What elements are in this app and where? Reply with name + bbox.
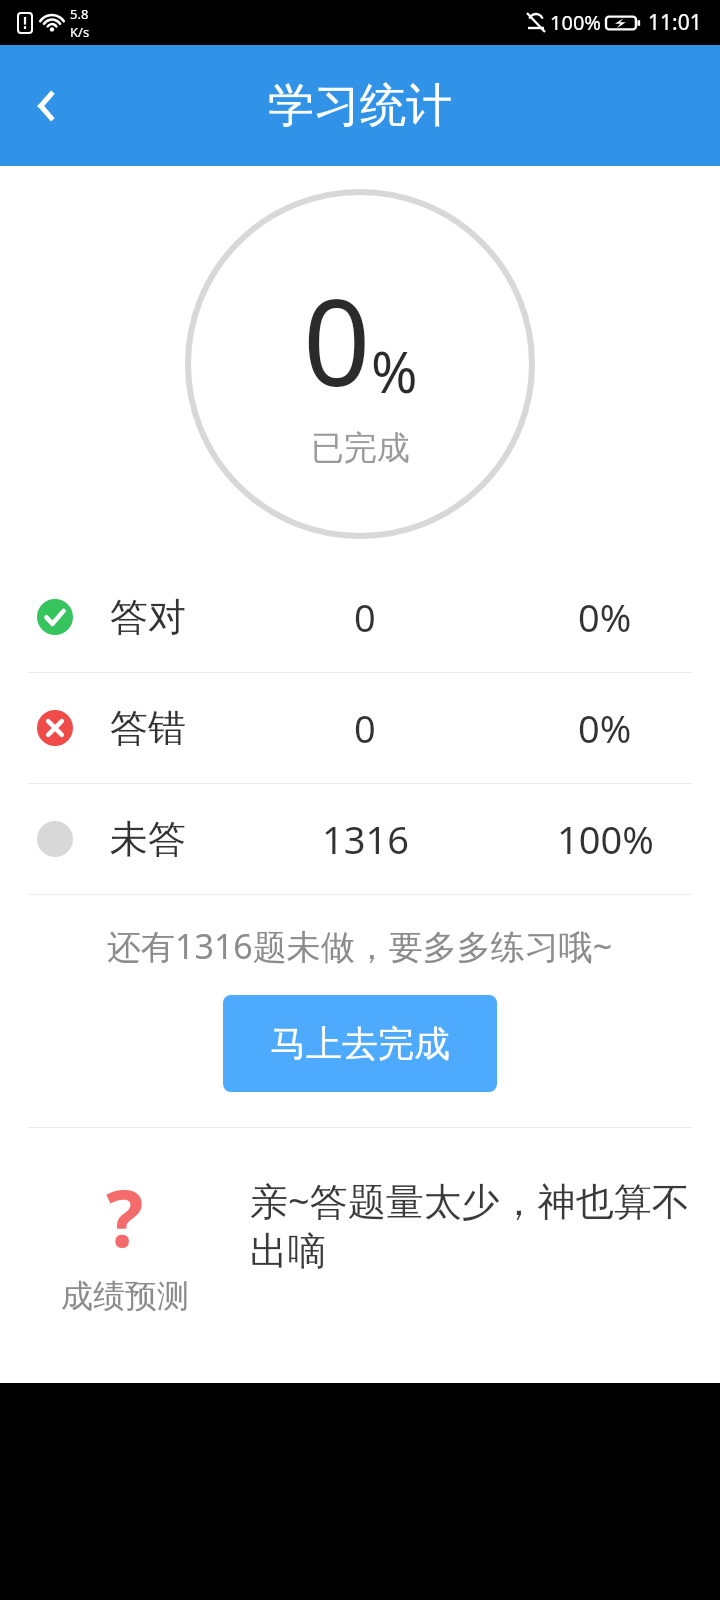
staticText: 1316 <box>322 813 409 865</box>
staticText: K/s <box>70 23 90 41</box>
button[interactable]: Back <box>0 45 96 166</box>
staticText: 0 <box>354 591 376 643</box>
staticText: 学习统计 <box>268 77 452 135</box>
staticText: 5.8 <box>70 5 89 23</box>
staticText: 0% <box>578 591 632 643</box>
staticText: ? <box>106 1164 144 1270</box>
button[interactable]: 马上去完成 <box>223 995 497 1092</box>
staticText: 100% <box>550 9 601 36</box>
button[interactable]: 未答 <box>0 784 720 894</box>
staticText: 答对 <box>110 593 186 641</box>
button[interactable]: 答错 <box>0 673 720 783</box>
staticText: 未答 <box>110 815 186 863</box>
staticText: 0% <box>578 702 632 754</box>
button[interactable]: 答对 <box>0 562 720 672</box>
staticText: 已完成 <box>311 427 410 469</box>
staticText: 成绩预测 <box>61 1276 189 1316</box>
staticText: 还有1316题未做，要多多练习哦~ <box>107 923 613 969</box>
staticText: % <box>371 333 418 409</box>
staticText: 亲~答题量太少，神也算不出嘀 <box>250 1174 702 1276</box>
staticText: 答错 <box>110 704 186 752</box>
staticText: 0 <box>354 702 376 754</box>
staticText: 100% <box>557 813 654 865</box>
staticText: 0 <box>303 260 371 421</box>
staticText: 马上去完成 <box>270 1021 450 1066</box>
staticText: 11:01 <box>648 8 702 37</box>
